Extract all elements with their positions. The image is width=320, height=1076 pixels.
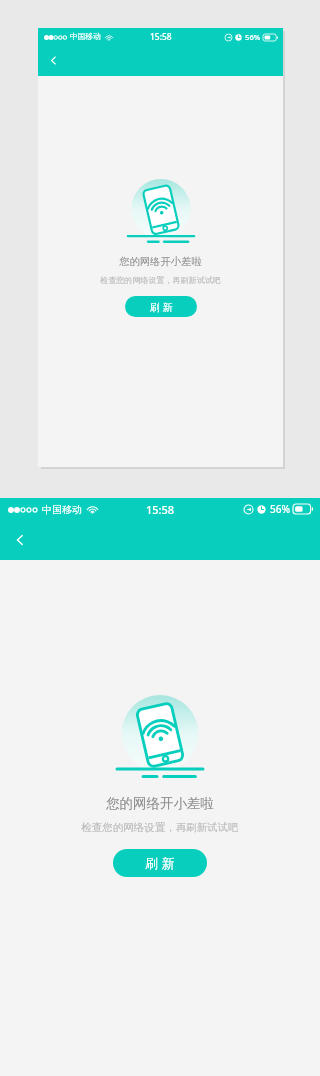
button[interactable]: 刷 新	[125, 296, 197, 317]
staticText: 15:58	[150, 31, 172, 42]
button[interactable]: 刷 新	[113, 849, 207, 877]
staticText: 中国移动	[70, 32, 101, 42]
staticText: 您的网络开小差啦	[119, 255, 202, 268]
staticText: 56%	[245, 32, 261, 42]
staticText: 您的网络开小差啦	[106, 795, 214, 812]
staticText: 刷 新	[150, 300, 173, 314]
staticText: 中国移动	[42, 503, 82, 516]
staticText: 刷 新	[145, 854, 175, 872]
staticText: 检查您的网络设置，再刷新试试吧	[81, 821, 239, 834]
staticText: 56%	[270, 502, 290, 516]
button[interactable]: Back	[38, 45, 69, 76]
staticText: 检查您的网络设置，再刷新试试吧	[100, 275, 221, 285]
button[interactable]: Back	[0, 520, 40, 560]
staticText: 15:58	[146, 502, 175, 517]
